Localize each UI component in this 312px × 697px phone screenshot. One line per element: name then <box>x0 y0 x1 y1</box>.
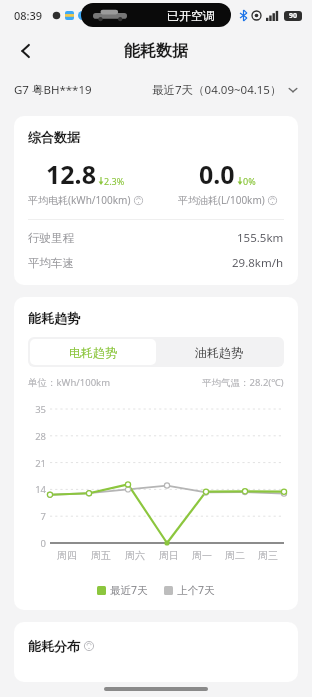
staticText: 平均车速 <box>28 256 74 270</box>
staticText: 21 <box>28 457 46 470</box>
button[interactable]: 能耗分布说明 <box>84 641 94 651</box>
staticText: 28 <box>28 430 46 443</box>
staticText: 155.5km <box>237 230 284 246</box>
staticText: 能耗分布 <box>28 638 80 654</box>
staticText: 0.0 <box>199 157 235 191</box>
staticText: 周六 <box>125 549 145 562</box>
staticText: 平均电耗(kWh/100km) <box>28 193 131 207</box>
staticText: 2.3% <box>104 175 125 187</box>
staticText: 最近7天（04.09~04.15） <box>152 82 282 98</box>
staticText: 08:39 <box>14 8 43 23</box>
staticText: 周三 <box>258 549 278 562</box>
staticText: 35 <box>28 403 46 416</box>
staticText: 29.8km/h <box>232 255 284 271</box>
button[interactable]: G7 粤BH***19 <box>14 82 92 98</box>
staticText: 周二 <box>225 549 245 562</box>
staticText: 周一 <box>192 549 212 562</box>
staticText: 最近7天 <box>110 583 148 597</box>
staticText: 上个7天 <box>177 583 215 597</box>
button[interactable]: 油耗趋势 <box>156 339 282 365</box>
staticText: 电耗趋势 <box>69 345 117 360</box>
staticText: 7 <box>28 510 46 523</box>
staticText: 12.8 <box>46 157 96 191</box>
button[interactable]: 返回 <box>6 31 46 71</box>
staticText: 能耗数据 <box>124 41 188 61</box>
staticText: 综合数据 <box>28 129 80 145</box>
staticText: G7 粤BH***19 <box>14 82 92 98</box>
staticText: 单位：kWh/100km <box>28 376 111 389</box>
staticText: 周日 <box>159 549 179 562</box>
staticText: 90 <box>289 11 298 21</box>
staticText: 0% <box>243 175 256 187</box>
button[interactable]: 电耗趋势 <box>30 339 156 365</box>
staticText: 平均气温：28.2(℃) <box>202 376 284 389</box>
button[interactable]: 说明 <box>134 196 143 205</box>
button[interactable]: 说明 <box>268 196 277 205</box>
staticText: 平均油耗(L/100km) <box>178 193 265 207</box>
staticText: 能耗趋势 <box>28 310 80 326</box>
staticText: 14 <box>28 483 46 496</box>
staticText: 周四 <box>57 549 77 562</box>
staticText: 已开空调 <box>167 8 215 23</box>
staticText: 行驶里程 <box>28 231 74 245</box>
button[interactable]: 最近7天（04.09~04.15） <box>152 82 298 98</box>
staticText: 0 <box>28 537 46 550</box>
staticText: 周五 <box>91 549 111 562</box>
staticText: 油耗趋势 <box>195 345 243 360</box>
